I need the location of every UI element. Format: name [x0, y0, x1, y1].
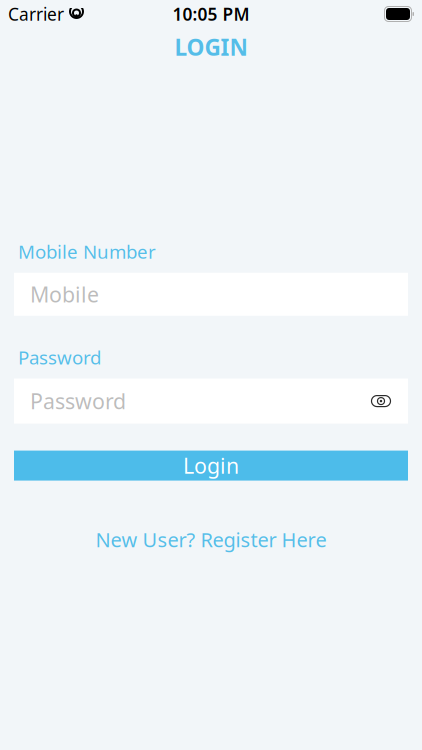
staticText: Password	[18, 345, 101, 370]
staticText: Password	[30, 387, 126, 415]
button[interactable]: Mobile	[14, 273, 408, 316]
staticText: New User? Register Here	[95, 526, 326, 553]
staticText: 10:05 PM	[172, 2, 249, 25]
button[interactable]: Password	[14, 379, 408, 424]
staticText: Mobile	[30, 280, 99, 308]
staticText: Mobile Number	[18, 239, 156, 264]
staticText: Login	[183, 451, 239, 480]
staticText: LOGIN	[174, 32, 247, 62]
staticText: Carrier	[8, 2, 64, 25]
button[interactable]: Login	[14, 451, 408, 481]
button[interactable]: New User? Register Here	[14, 527, 408, 553]
